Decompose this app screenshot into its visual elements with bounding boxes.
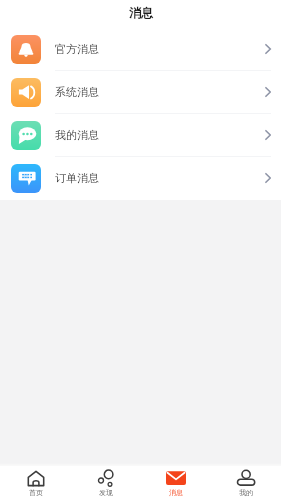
staticText: 消息 bbox=[169, 488, 183, 497]
other: 我的 bbox=[236, 470, 256, 487]
other: 发现 bbox=[96, 470, 116, 487]
staticText: 消息 bbox=[129, 5, 153, 20]
staticText: 我的 bbox=[239, 488, 253, 497]
other: 消息 bbox=[166, 470, 186, 487]
button[interactable]: 消息 bbox=[141, 466, 211, 500]
button[interactable]: 发现 bbox=[71, 466, 141, 500]
staticText: 发现 bbox=[99, 488, 113, 497]
staticText: 首页 bbox=[29, 488, 43, 497]
staticText: 系统消息 bbox=[55, 85, 99, 99]
button[interactable]: 首页 bbox=[0, 466, 71, 500]
button[interactable]: 订单消息 bbox=[0, 157, 281, 199]
button[interactable]: 我的 bbox=[211, 466, 281, 500]
staticText: 官方消息 bbox=[55, 42, 99, 56]
button[interactable]: 官方消息 bbox=[0, 28, 281, 70]
button[interactable]: 系统消息 bbox=[0, 71, 281, 113]
staticText: 订单消息 bbox=[55, 171, 99, 185]
staticText: 我的消息 bbox=[55, 128, 99, 142]
button[interactable]: 我的消息 bbox=[0, 114, 281, 156]
other: 首页 bbox=[26, 470, 46, 487]
